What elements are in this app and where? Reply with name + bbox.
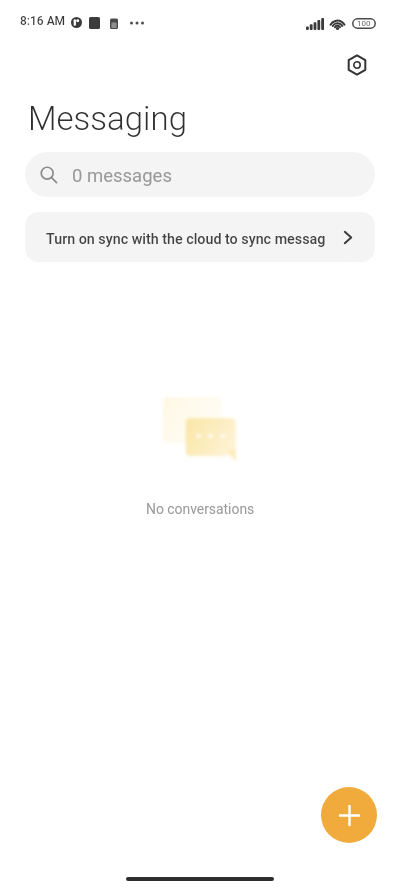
- button[interactable]: Turn on sync with the cloud to sync mess…: [25, 212, 375, 262]
- staticText: Turn on sync with the cloud to sync mess…: [46, 231, 325, 248]
- button[interactable]: Settings: [337, 45, 377, 85]
- staticText: 0 messages: [72, 165, 172, 187]
- button[interactable]: 0 messages: [25, 152, 375, 197]
- staticText: No conversations: [146, 501, 255, 517]
- staticText: Messaging: [28, 99, 187, 138]
- button[interactable]: New conversation: [321, 787, 377, 843]
- staticText: 100: [357, 19, 371, 28]
- staticText: 8:16 AM: [20, 14, 66, 28]
